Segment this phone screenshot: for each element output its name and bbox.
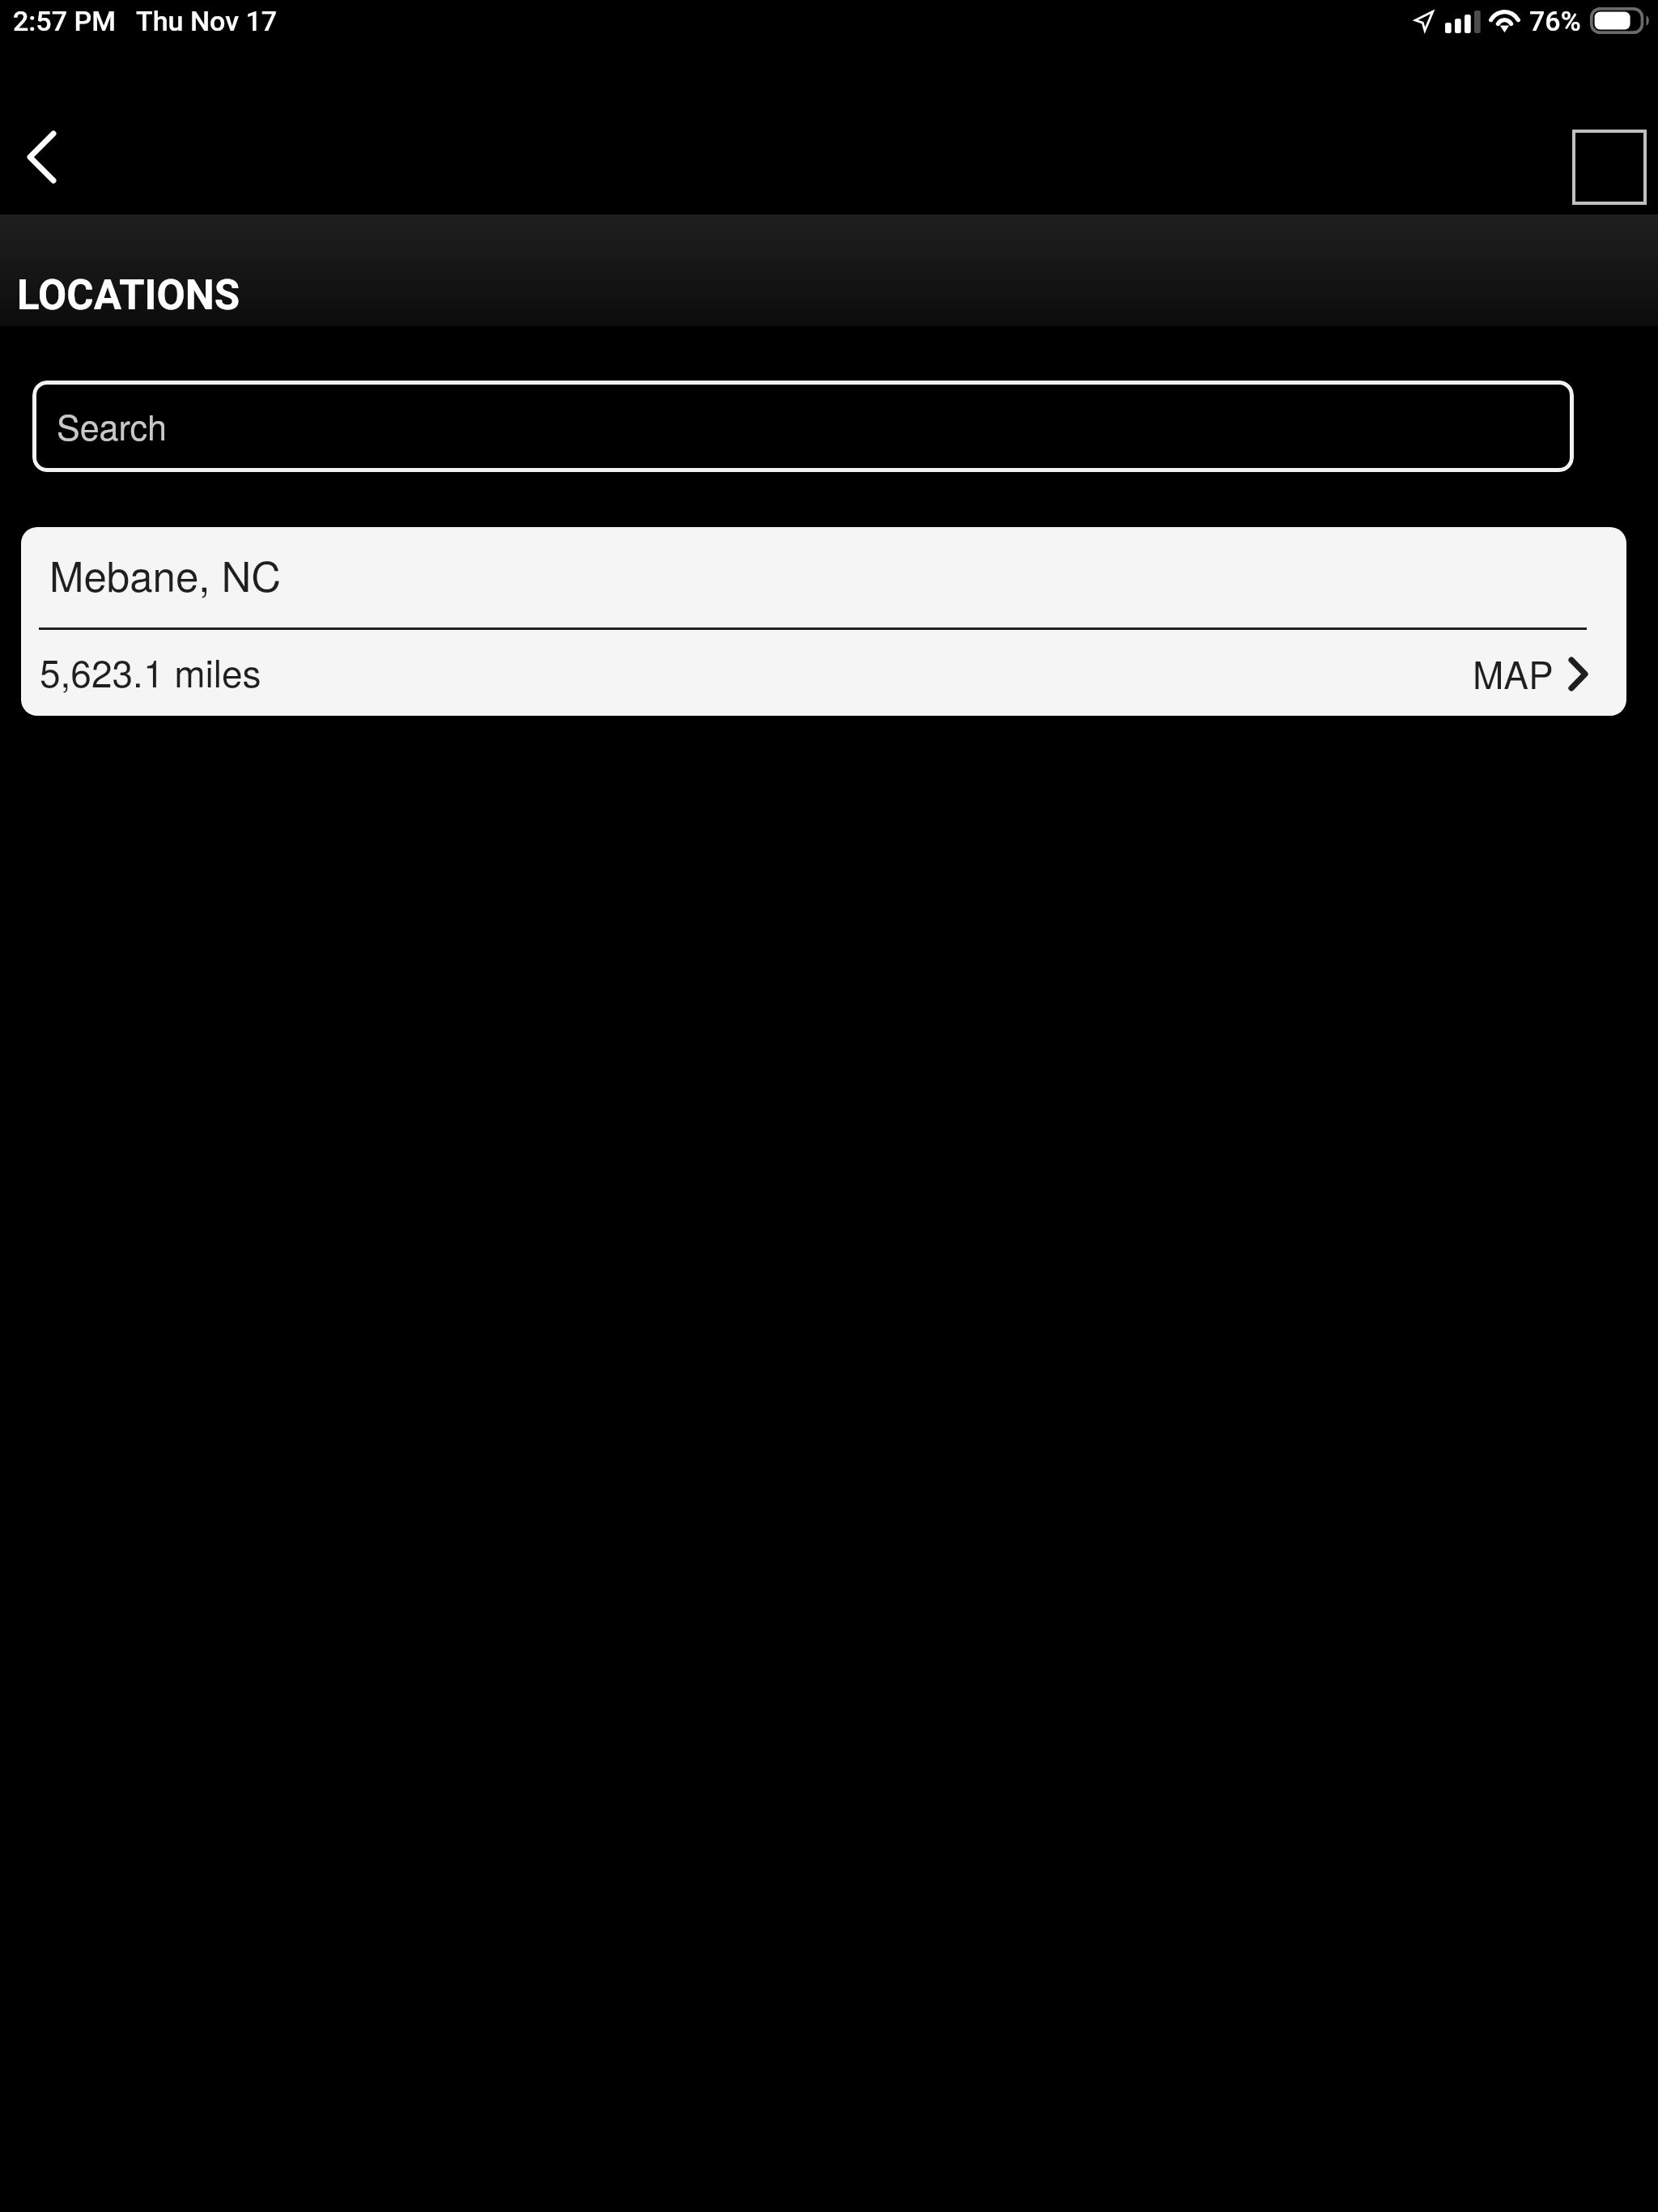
staticText: MAP	[1473, 646, 1554, 700]
staticText: 76%	[1529, 5, 1581, 37]
button[interactable]: App logo	[1572, 130, 1647, 205]
button[interactable]: MAP	[1473, 644, 1588, 701]
button[interactable]: Mebane, NC	[21, 527, 1626, 716]
button[interactable]: Search	[32, 381, 1574, 472]
staticText: 2:57 PM	[13, 5, 116, 37]
staticText: LOCATIONS	[17, 271, 240, 320]
button[interactable]: Back	[0, 112, 85, 201]
staticText: Thu Nov 17	[136, 5, 278, 37]
staticText: Search	[57, 401, 168, 451]
staticText: 5,623.1 miles	[40, 644, 261, 698]
staticText: Mebane, NC	[49, 544, 282, 603]
